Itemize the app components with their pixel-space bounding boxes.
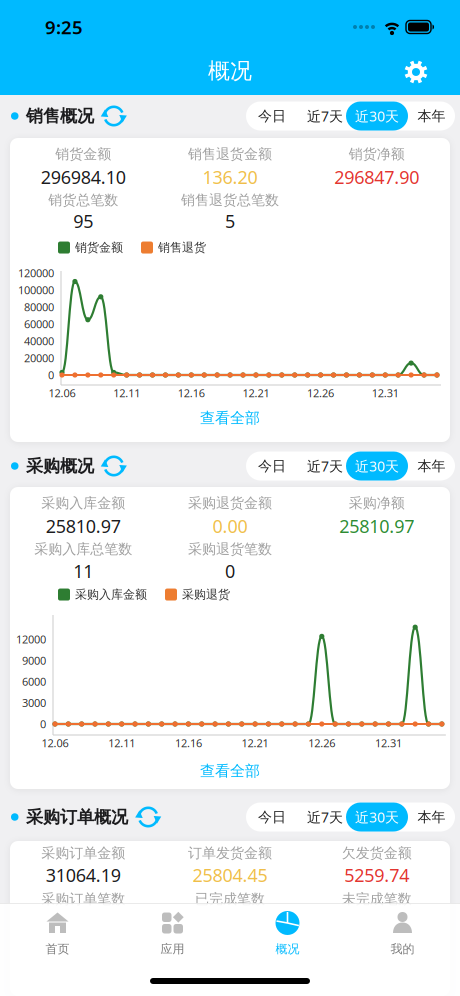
staticText: 我的 bbox=[390, 941, 414, 956]
button[interactable]: 今日 bbox=[246, 451, 298, 480]
staticText: 25804.45 bbox=[192, 863, 267, 887]
staticText: 25810.97 bbox=[46, 514, 121, 538]
staticText: 95 bbox=[73, 209, 93, 233]
staticText: 查看全部 bbox=[200, 762, 260, 780]
staticText: 销售概况 bbox=[26, 105, 94, 127]
staticText: 近7天 bbox=[307, 106, 343, 126]
staticText: 应用 bbox=[160, 941, 184, 956]
staticText: 12.21 bbox=[242, 735, 269, 750]
staticText: 订单发货金额 bbox=[188, 844, 272, 862]
staticText: 采购订单金额 bbox=[41, 844, 125, 862]
staticText: 5259.74 bbox=[344, 863, 409, 887]
staticText: 0.00 bbox=[212, 514, 247, 538]
staticText: 销货净额 bbox=[349, 145, 405, 163]
button[interactable]: 查看全部 bbox=[170, 405, 290, 431]
staticText: 0 bbox=[48, 367, 54, 382]
staticText: 0 bbox=[225, 559, 235, 583]
button[interactable]: 本年 bbox=[408, 802, 455, 831]
staticText: 40000 bbox=[24, 333, 54, 348]
staticText: 12.21 bbox=[242, 385, 269, 400]
staticText: 首页 bbox=[45, 941, 69, 956]
button[interactable]: 今日 bbox=[246, 101, 298, 130]
staticText: 80000 bbox=[24, 299, 54, 314]
button[interactable]: 查看全部 bbox=[170, 758, 290, 784]
staticText: 销货总笔数 bbox=[48, 191, 118, 209]
staticText: 12.11 bbox=[108, 735, 135, 750]
staticText: 11 bbox=[73, 559, 93, 583]
staticText: 12.31 bbox=[375, 735, 402, 750]
staticText: 概况 bbox=[275, 941, 299, 956]
staticText: 12.11 bbox=[113, 385, 140, 400]
staticText: 采购退货 bbox=[182, 587, 230, 602]
staticText: 采购退货金额 bbox=[188, 494, 272, 512]
staticText: 20000 bbox=[24, 350, 54, 365]
staticText: 查看全部 bbox=[200, 409, 260, 427]
staticText: 未完成笔数 bbox=[342, 890, 412, 908]
staticText: 今日 bbox=[258, 457, 286, 475]
staticText: 销售退货总笔数 bbox=[181, 191, 279, 209]
staticText: 5 bbox=[225, 209, 235, 233]
staticText: 近7天 bbox=[307, 456, 343, 476]
staticText: 60000 bbox=[24, 316, 54, 331]
staticText: 近30天 bbox=[355, 456, 399, 476]
staticText: 近30天 bbox=[355, 807, 399, 827]
button[interactable]: 近30天 bbox=[346, 802, 408, 831]
staticText: 12.16 bbox=[175, 735, 202, 750]
button[interactable]: Settings bbox=[403, 59, 429, 85]
staticText: 3000 bbox=[22, 695, 46, 710]
staticText: 12.06 bbox=[41, 735, 68, 750]
staticText: 120000 bbox=[18, 265, 54, 280]
staticText: 销货金额 bbox=[55, 145, 111, 163]
button[interactable]: 近7天 bbox=[298, 101, 352, 130]
staticText: 今日 bbox=[258, 107, 286, 125]
staticText: 本年 bbox=[417, 107, 445, 125]
staticText: 销货金额 bbox=[75, 240, 123, 255]
button[interactable]: 应用 bbox=[115, 903, 230, 965]
staticText: 销售退货 bbox=[158, 240, 206, 255]
staticText: 采购订单概况 bbox=[26, 806, 128, 828]
button[interactable]: 概况 bbox=[230, 903, 345, 965]
staticText: 概况 bbox=[208, 57, 252, 85]
staticText: 296984.10 bbox=[41, 165, 126, 189]
staticText: 100000 bbox=[18, 282, 54, 297]
button[interactable]: 近30天 bbox=[346, 451, 408, 480]
staticText: 12.16 bbox=[178, 385, 205, 400]
button[interactable]: 近7天 bbox=[298, 451, 352, 480]
staticText: 12.26 bbox=[307, 385, 334, 400]
staticText: 采购退货笔数 bbox=[188, 540, 272, 558]
staticText: 本年 bbox=[417, 457, 445, 475]
staticText: 采购入库金额 bbox=[41, 494, 125, 512]
button[interactable]: 近30天 bbox=[346, 101, 408, 130]
staticText: 采购入库总笔数 bbox=[34, 540, 132, 558]
button[interactable]: 本年 bbox=[408, 101, 455, 130]
staticText: 0 bbox=[40, 716, 46, 731]
staticText: 销售退货金额 bbox=[188, 145, 272, 163]
staticText: 9:25 bbox=[45, 14, 83, 40]
button[interactable]: Refresh bbox=[102, 104, 126, 128]
staticText: 136.20 bbox=[202, 165, 257, 189]
staticText: 本年 bbox=[417, 808, 445, 826]
button[interactable]: 首页 bbox=[0, 903, 115, 965]
staticText: 12000 bbox=[16, 632, 46, 647]
staticText: 采购净额 bbox=[349, 494, 405, 512]
staticText: 欠发货金额 bbox=[342, 844, 412, 862]
staticText: 近30天 bbox=[355, 106, 399, 126]
staticText: 31064.19 bbox=[46, 863, 121, 887]
button[interactable]: 本年 bbox=[408, 451, 455, 480]
staticText: 12.06 bbox=[48, 385, 75, 400]
button[interactable]: Refresh bbox=[102, 454, 126, 478]
staticText: 采购订单笔数 bbox=[41, 890, 125, 908]
staticText: 6000 bbox=[22, 674, 46, 689]
staticText: 已完成笔数 bbox=[195, 890, 265, 908]
staticText: 25810.97 bbox=[339, 514, 414, 538]
staticText: 12.26 bbox=[308, 735, 335, 750]
button[interactable]: 今日 bbox=[246, 802, 298, 831]
staticText: 今日 bbox=[258, 808, 286, 826]
staticText: 采购入库金额 bbox=[75, 587, 147, 602]
staticText: 9000 bbox=[22, 653, 46, 668]
button[interactable]: 近7天 bbox=[298, 802, 352, 831]
staticText: 采购概况 bbox=[26, 455, 94, 477]
button[interactable]: 我的 bbox=[345, 903, 460, 965]
button[interactable]: Refresh bbox=[136, 805, 160, 829]
staticText: 296847.90 bbox=[334, 165, 419, 189]
